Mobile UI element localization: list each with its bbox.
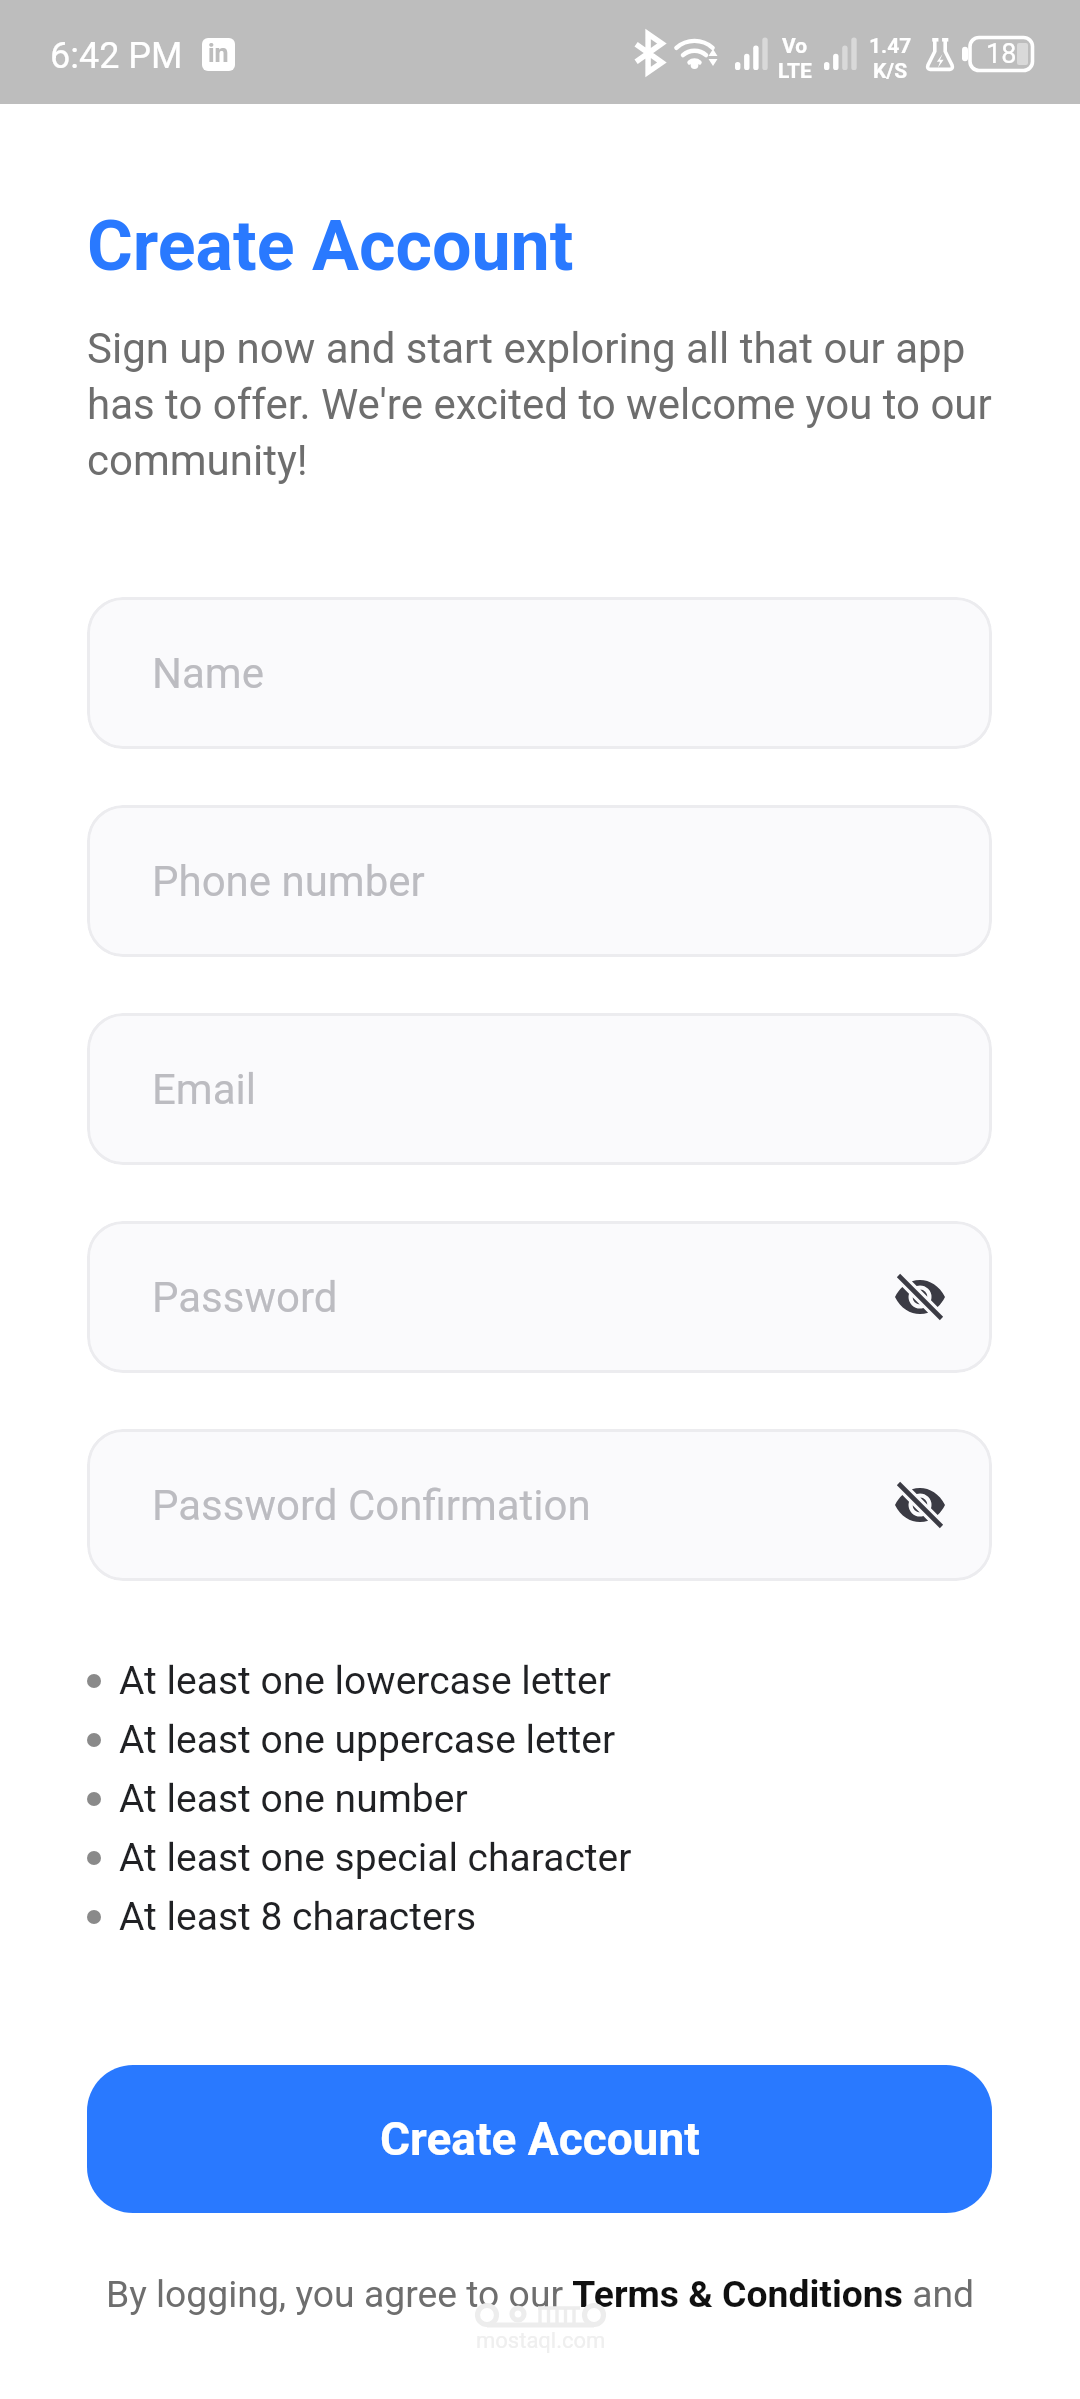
staticText: 18: [986, 38, 1017, 70]
staticText: K/S: [873, 59, 908, 84]
staticText: Name: [152, 649, 264, 698]
button[interactable]: [573, 2270, 916, 2314]
button[interactable]: Show password: [877, 1462, 963, 1548]
button[interactable]: Show password: [877, 1254, 963, 1340]
staticText: At least one uppercase letter: [119, 1717, 616, 1763]
staticText: 1.47: [869, 34, 912, 59]
staticText: At least one number: [119, 1776, 468, 1822]
staticText: Password: [152, 1273, 338, 1322]
staticText: 6:42 PM: [50, 35, 183, 77]
button[interactable]: Phone number: [87, 805, 992, 957]
staticText: At least one special character: [119, 1835, 632, 1881]
staticText: in: [208, 39, 229, 68]
button[interactable]: Password: [87, 1221, 992, 1373]
staticText: At least 8 characters: [119, 1894, 477, 1940]
button[interactable]: Name: [87, 597, 992, 749]
button[interactable]: Password Confirmation: [87, 1429, 992, 1581]
button[interactable]: Create Account: [87, 2065, 992, 2213]
staticText: Create Account: [87, 205, 574, 287]
staticText: At least one lowercase letter: [119, 1658, 611, 1704]
staticText: Sign up now and start exploring all that…: [87, 324, 992, 486]
staticText: Phone number: [152, 857, 425, 906]
button[interactable]: Email: [87, 1013, 992, 1165]
staticText: Email: [152, 1065, 256, 1114]
staticText: Password Confirmation: [152, 1481, 591, 1530]
staticText: By logging, you agree to our Terms & Con…: [0, 2272, 1080, 2316]
staticText: Vo: [782, 34, 808, 59]
staticText: LTE: [778, 59, 812, 84]
staticText: mostaql.com: [476, 2328, 606, 2354]
staticText: Create Account: [380, 2112, 700, 2166]
